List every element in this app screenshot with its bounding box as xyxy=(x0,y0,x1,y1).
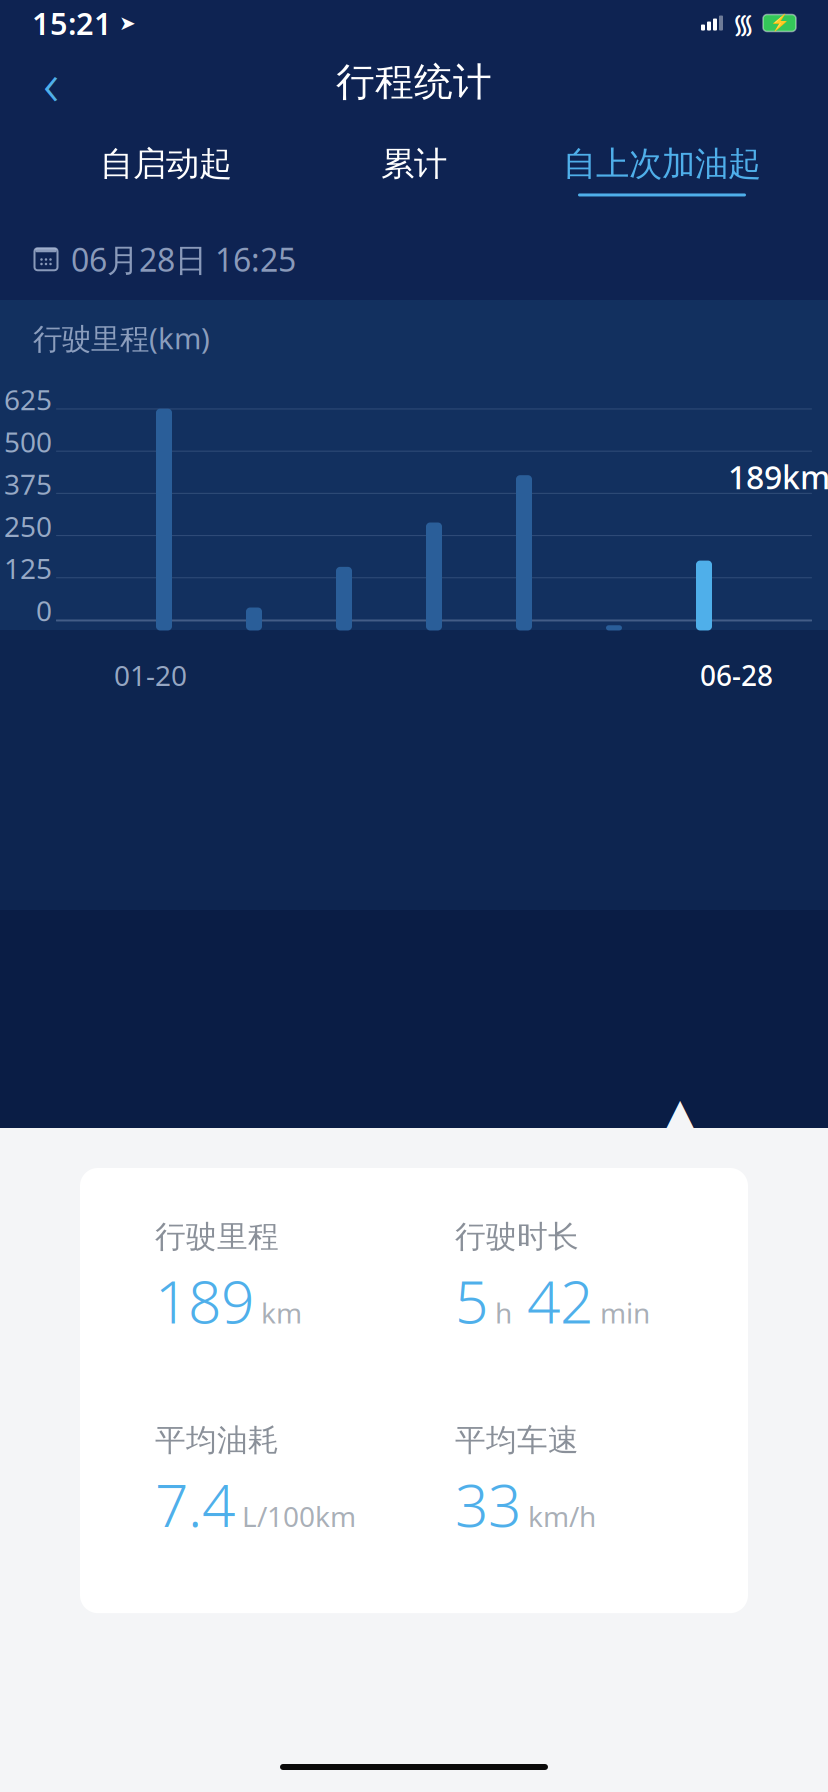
staticText: 06月28日 16:25 xyxy=(71,238,296,280)
staticText: ➤ xyxy=(112,12,136,34)
button[interactable]: 累计 xyxy=(290,136,538,204)
staticText: 06-28 xyxy=(700,656,773,694)
staticText: L/100km xyxy=(235,1497,356,1535)
staticText: 01-20 xyxy=(114,656,187,694)
staticText: 375 xyxy=(4,465,52,502)
button[interactable]: 自上次加油起 xyxy=(538,136,786,204)
staticText: 平均油耗 xyxy=(155,1422,279,1459)
staticText: km xyxy=(254,1294,302,1331)
staticText: 行驶时长 xyxy=(455,1218,579,1256)
staticText: 行驶里程(km) xyxy=(33,318,210,357)
staticText: 189km xyxy=(728,456,828,498)
staticText: 行程统计 xyxy=(336,58,492,106)
staticText: 33 xyxy=(455,1465,521,1543)
staticText: 500 xyxy=(4,423,52,460)
staticText: 平均车速 xyxy=(455,1422,579,1459)
staticText: ⚡ xyxy=(769,14,789,32)
staticText: 250 xyxy=(4,507,52,545)
staticText: 625 xyxy=(4,381,52,418)
staticText: ‹ xyxy=(43,41,59,123)
button[interactable]: 自启动起 xyxy=(42,136,290,204)
staticText: h xyxy=(488,1294,512,1331)
staticText: 累计 xyxy=(381,143,447,184)
staticText: ▲ xyxy=(656,1084,703,1154)
staticText: 189 xyxy=(155,1262,254,1340)
staticText: ᯾ xyxy=(732,5,755,41)
staticText: 自启动起 xyxy=(100,143,232,184)
staticText: 42 xyxy=(512,1262,593,1340)
staticText: 行驶里程 xyxy=(155,1218,279,1256)
staticText: 5 xyxy=(455,1262,488,1340)
button[interactable]: 返回 xyxy=(20,51,82,113)
staticText: min xyxy=(593,1294,650,1331)
staticText: km/h xyxy=(521,1497,596,1535)
staticText: 0 xyxy=(36,592,52,629)
staticText: 15:21 xyxy=(32,3,112,43)
staticText: 自上次加油起 xyxy=(563,143,761,184)
staticText: 125 xyxy=(4,550,52,587)
staticText: 7.4 xyxy=(155,1465,235,1543)
